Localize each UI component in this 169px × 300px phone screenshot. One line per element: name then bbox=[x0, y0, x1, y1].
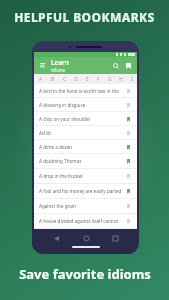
button[interactable]: Bookmark bbox=[124, 217, 132, 225]
staticText: A drop in the bucket bbox=[39, 173, 124, 179]
staticText: C bbox=[63, 76, 66, 82]
button[interactable]: A chip on your shoulder bbox=[34, 112, 137, 125]
button[interactable]: Bookmark bbox=[124, 101, 132, 109]
button[interactable]: A drop in the bucket bbox=[34, 169, 137, 183]
staticText: H bbox=[119, 76, 123, 82]
button[interactable]: G bbox=[104, 74, 115, 84]
button[interactable]: I bbox=[126, 74, 137, 84]
button[interactable]: Bookmark bbox=[124, 143, 132, 151]
button[interactable]: Bookmarks bbox=[123, 61, 133, 71]
button[interactable]: A fool and his money are easily parted bbox=[34, 184, 137, 198]
staticText: idioms bbox=[51, 67, 66, 73]
button[interactable]: Bookmark bbox=[124, 202, 132, 210]
staticText: D bbox=[74, 76, 78, 82]
button[interactable]: Bookmark bbox=[124, 87, 132, 95]
button[interactable]: Home bbox=[81, 233, 91, 243]
button[interactable]: Bookmark bbox=[124, 129, 132, 137]
button[interactable]: A blessing in disguise bbox=[34, 98, 137, 111]
staticText: B bbox=[51, 76, 54, 82]
staticText: I bbox=[131, 76, 133, 82]
staticText: A house divided against itself cannot st… bbox=[39, 218, 124, 224]
button[interactable]: A doubting Thomas bbox=[34, 154, 137, 168]
button[interactable]: C bbox=[58, 74, 70, 84]
button[interactable]: Recents bbox=[110, 233, 120, 243]
button[interactable]: D bbox=[70, 74, 82, 84]
button[interactable]: Against the grain bbox=[34, 199, 137, 213]
staticText: HELPFUL BOOKMARKS bbox=[14, 9, 155, 25]
button[interactable]: H bbox=[115, 74, 126, 84]
staticText: Against the grain bbox=[39, 203, 124, 209]
button[interactable]: Bookmark bbox=[124, 172, 132, 180]
staticText: A dime a dozen bbox=[39, 144, 124, 150]
staticText: A doubting Thomas bbox=[39, 158, 124, 164]
staticText: A bbox=[39, 76, 42, 82]
staticText: Ad lib bbox=[39, 130, 124, 136]
button[interactable]: Back bbox=[51, 233, 61, 243]
button[interactable]: E bbox=[82, 74, 93, 84]
button[interactable]: Navigation menu bbox=[38, 61, 47, 70]
button[interactable]: Bookmark bbox=[124, 187, 132, 195]
button[interactable]: A dime a dozen bbox=[34, 140, 137, 153]
staticText: F bbox=[97, 76, 100, 82]
staticText: Learn bbox=[51, 58, 69, 67]
button[interactable]: F bbox=[93, 74, 104, 84]
button[interactable]: Bookmark bbox=[124, 157, 132, 165]
button[interactable]: Ad lib bbox=[34, 126, 137, 139]
staticText: A bird in the hand is worth two in the b… bbox=[39, 88, 124, 94]
staticText: A fool and his money are easily parted bbox=[39, 188, 124, 194]
button[interactable]: Search bbox=[111, 61, 121, 71]
staticText: E bbox=[86, 76, 89, 82]
staticText: A chip on your shoulder bbox=[39, 116, 124, 122]
staticText: Save favorite idioms bbox=[19, 265, 151, 283]
button[interactable]: A bbox=[34, 74, 46, 84]
button[interactable]: B bbox=[46, 74, 58, 84]
staticText: G bbox=[108, 76, 112, 82]
button[interactable]: A house divided against itself cannot st… bbox=[34, 214, 137, 228]
button[interactable]: Bookmark bbox=[124, 115, 132, 123]
staticText: A blessing in disguise bbox=[39, 102, 124, 108]
button[interactable]: A bird in the hand is worth two in the b… bbox=[34, 84, 137, 97]
